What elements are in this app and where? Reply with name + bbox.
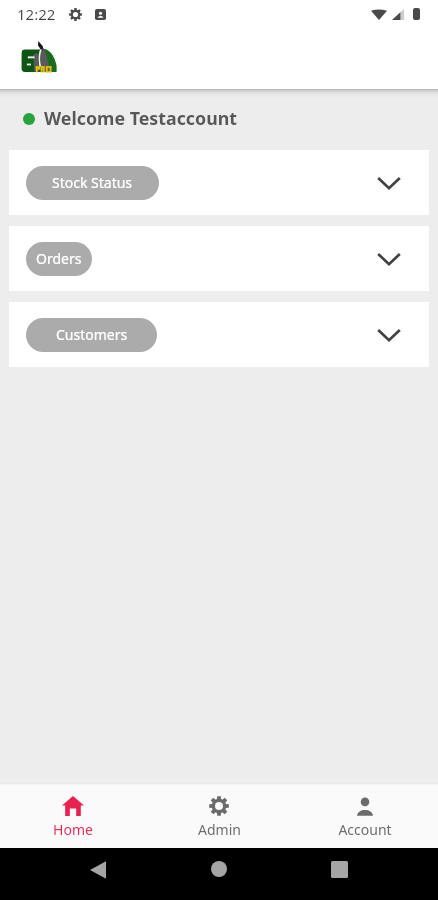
- button[interactable]: Orders: [26, 242, 92, 276]
- button[interactable]: Home: [211, 861, 227, 877]
- button[interactable]: Stock Status: [9, 150, 429, 215]
- button[interactable]: Expand Stock Status: [377, 176, 401, 190]
- staticText: Welcome Testaccount: [44, 106, 238, 130]
- button[interactable]: Admin: [146, 785, 292, 848]
- button[interactable]: Back: [90, 861, 106, 879]
- staticText: Admin: [198, 820, 241, 839]
- button[interactable]: Expand Customers: [377, 328, 401, 342]
- button[interactable]: Home: [0, 785, 146, 848]
- button[interactable]: Expand Orders: [377, 252, 401, 266]
- staticText: Home: [53, 820, 93, 839]
- button[interactable]: Recents: [331, 861, 348, 878]
- staticText: Account: [338, 820, 392, 839]
- button[interactable]: Account: [292, 785, 438, 848]
- staticText: Customers: [56, 325, 128, 344]
- button[interactable]: Orders: [9, 226, 429, 291]
- button[interactable]: Stock Status: [26, 166, 159, 200]
- staticText: Orders: [36, 249, 82, 268]
- staticText: Stock Status: [52, 173, 133, 192]
- button[interactable]: Customers: [26, 318, 157, 352]
- staticText: 12:22: [17, 4, 56, 24]
- button[interactable]: Customers: [9, 302, 429, 367]
